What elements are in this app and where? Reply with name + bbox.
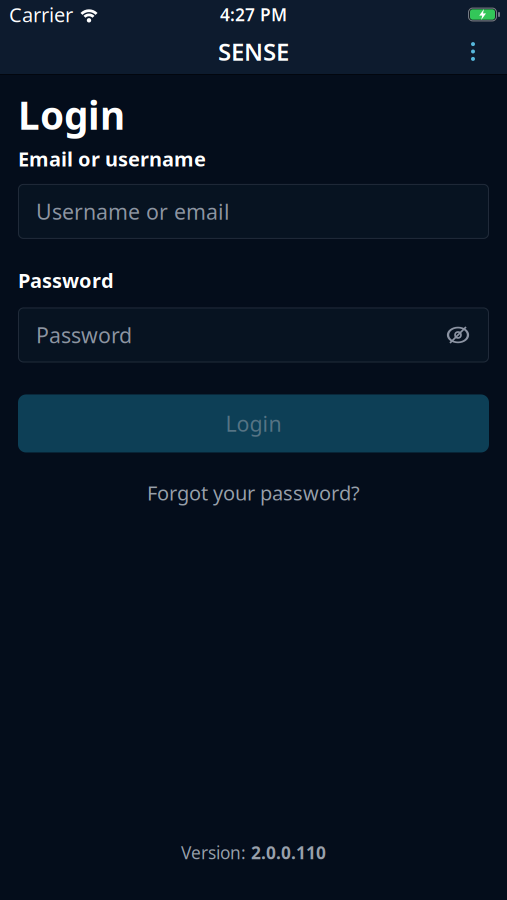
staticText: Username or email	[36, 197, 230, 225]
staticText: Login	[18, 89, 125, 140]
staticText: Login	[225, 409, 281, 438]
staticText: Password	[18, 267, 114, 293]
staticText: Carrier	[9, 1, 73, 28]
staticText: Forgot your password?	[147, 479, 360, 506]
button[interactable]: Login	[18, 394, 489, 452]
staticText: 4:27 PM	[220, 3, 287, 26]
button[interactable]: Show password	[447, 325, 469, 345]
staticText: SENSE	[218, 36, 289, 67]
button[interactable]: More options	[454, 31, 492, 71]
staticText: Password	[36, 321, 132, 349]
staticText: 2.0.0.110	[251, 841, 326, 864]
staticText: Email or username	[18, 145, 206, 172]
button[interactable]: Forgot your password?	[147, 479, 360, 506]
staticText: Version:	[181, 841, 251, 864]
